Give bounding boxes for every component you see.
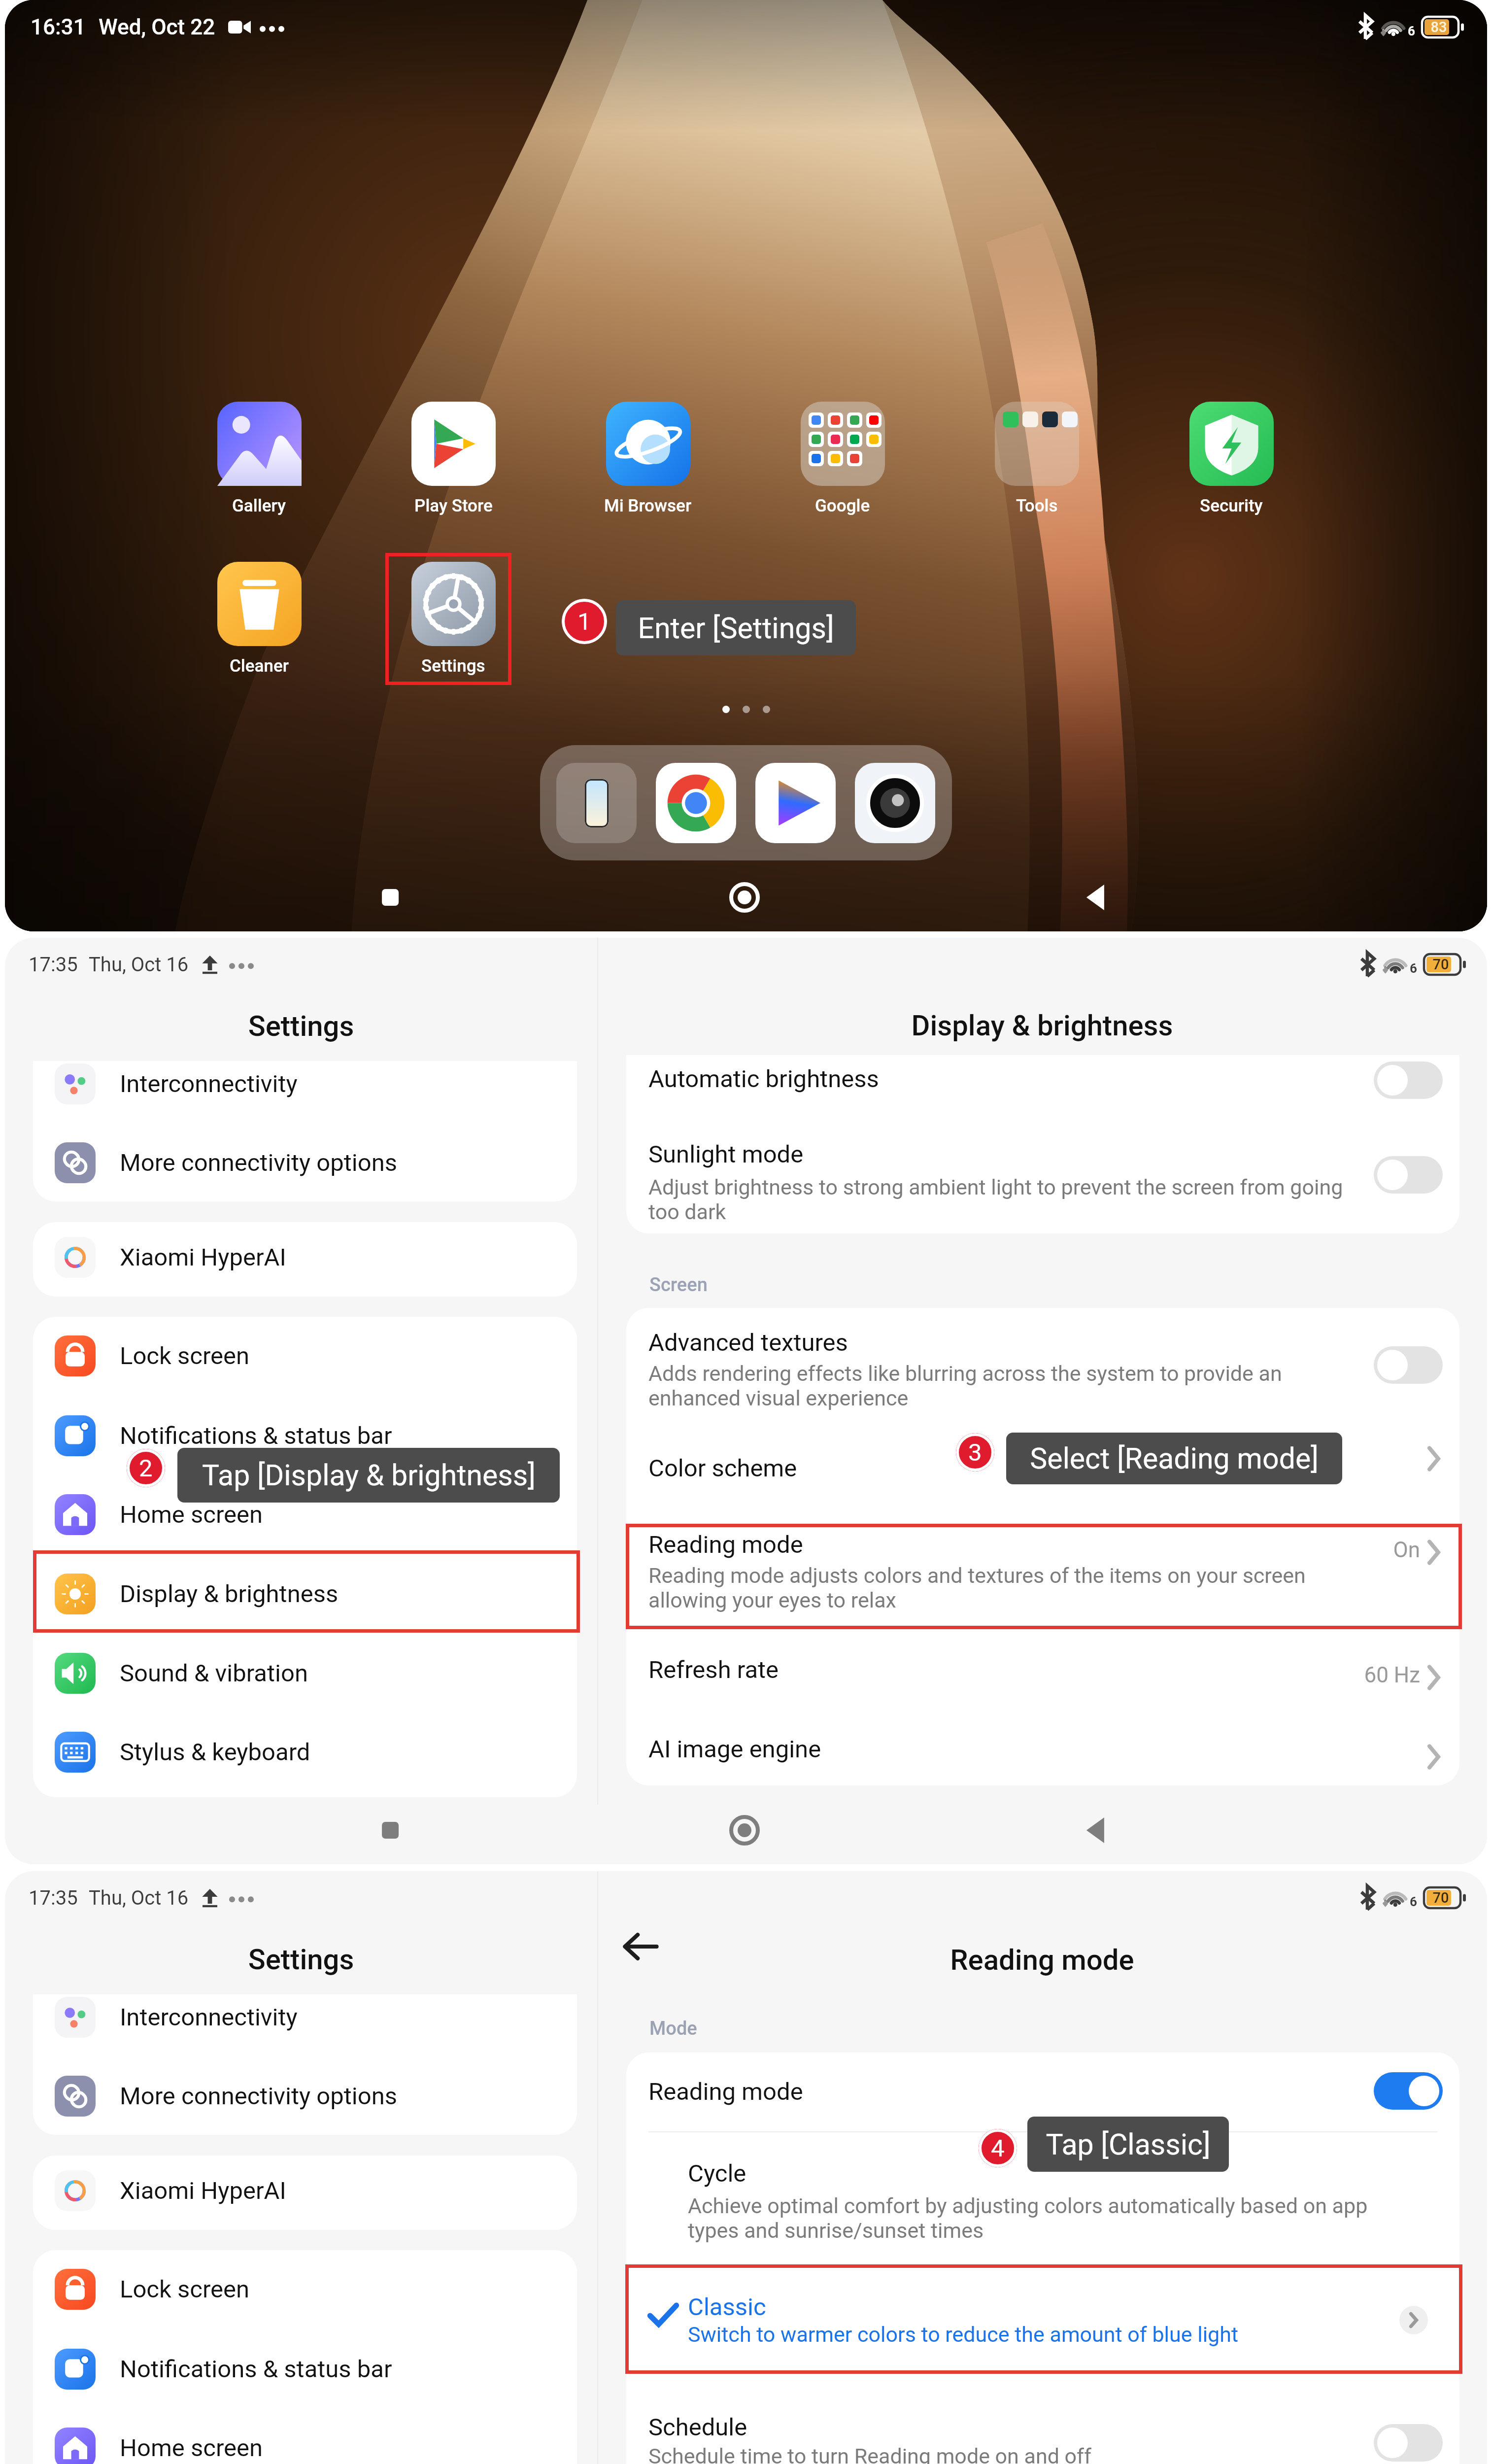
button[interactable]: [626, 2053, 1459, 2131]
button[interactable]: Themes: [556, 763, 637, 843]
staticText: Reading mode: [648, 1531, 803, 1559]
button[interactable]: Toggle: [1374, 2072, 1443, 2110]
button[interactable]: Settings: [394, 562, 512, 676]
staticText: 4: [991, 2134, 1005, 2162]
staticText: Tools: [1016, 496, 1058, 516]
button[interactable]: Notifications & status bar: [33, 1396, 577, 1475]
staticText: Wed, Oct 22: [99, 14, 215, 40]
button[interactable]: Display & brightness: [33, 1554, 577, 1633]
button[interactable]: Gallery: [200, 402, 318, 516]
button[interactable]: [626, 2264, 1459, 2374]
staticText: Reading mode: [648, 2078, 803, 2106]
staticText: 17:35: [29, 953, 78, 976]
staticText: 60 Hz: [1223, 1662, 1420, 1688]
button[interactable]: Chrome: [656, 763, 736, 843]
button[interactable]: Xiaomi HyperAI: [33, 2156, 577, 2228]
staticText: Security: [1200, 496, 1263, 516]
button[interactable]: [626, 2131, 1459, 2264]
staticText: 3: [968, 1438, 982, 1467]
staticText: On: [1223, 1537, 1420, 1563]
button[interactable]: Video: [755, 763, 836, 843]
staticText: More connectivity options: [120, 2082, 398, 2110]
button[interactable]: Lock screen: [33, 1317, 577, 1395]
staticText: Advanced textures: [648, 1329, 848, 1357]
staticText: Tap [Display & brightness]: [202, 1458, 536, 1492]
button[interactable]: Tools: [978, 402, 1096, 516]
staticText: 6: [1410, 1894, 1417, 1909]
staticText: Adjust brightness to strong ambient ligh…: [648, 1175, 1360, 1224]
button[interactable]: [626, 1422, 1459, 1495]
button[interactable]: Mi Browser: [589, 402, 707, 516]
staticText: Interconnectivity: [120, 1070, 298, 1098]
button[interactable]: Play Store: [394, 402, 512, 516]
button[interactable]: [626, 2374, 1459, 2464]
staticText: Gallery: [232, 496, 286, 516]
staticText: Select [Reading mode]: [1030, 1441, 1319, 1475]
staticText: More connectivity options: [120, 1149, 398, 1177]
staticText: Reading mode: [597, 1943, 1487, 1977]
button[interactable]: Stylus & keyboard: [33, 1712, 577, 1791]
button[interactable]: [626, 1115, 1459, 1233]
button[interactable]: Security: [1172, 402, 1290, 516]
button[interactable]: Home screen: [33, 2408, 577, 2464]
staticText: Color scheme: [648, 1454, 797, 1482]
button[interactable]: Google: [783, 402, 902, 516]
staticText: Sound & vibration: [120, 1659, 308, 1687]
staticText: 17:35: [29, 1886, 78, 1910]
staticText: Stylus & keyboard: [120, 1738, 310, 1766]
button[interactable]: Toggle: [1374, 1346, 1443, 1384]
button[interactable]: [626, 1495, 1459, 1609]
staticText: Settings: [5, 1943, 597, 1976]
staticText: Enter [Settings]: [638, 611, 834, 645]
button[interactable]: Lock screen: [33, 2250, 577, 2328]
staticText: Play Store: [414, 496, 493, 516]
button[interactable]: [626, 1688, 1459, 1767]
button[interactable]: More connectivity options: [33, 1123, 577, 1201]
button[interactable]: Interconnectivity: [33, 1994, 577, 2056]
staticText: Settings: [421, 656, 485, 676]
button[interactable]: [626, 1055, 1459, 1115]
staticText: Thu, Oct 16: [89, 953, 189, 976]
button[interactable]: Back: [617, 1923, 664, 1970]
staticText: Interconnectivity: [120, 2003, 298, 2031]
staticText: Adds rendering effects like blurring acr…: [648, 1361, 1360, 1410]
button[interactable]: [626, 1609, 1459, 1688]
staticText: Xiaomi HyperAI: [120, 2177, 286, 2205]
staticText: 6: [1408, 24, 1415, 38]
staticText: Sunlight mode: [648, 1140, 804, 1168]
staticText: Tap [Classic]: [1046, 2127, 1211, 2161]
staticText: 83: [1421, 19, 1457, 35]
staticText: Mode: [649, 2018, 697, 2040]
button[interactable]: Notifications & status bar: [33, 2329, 577, 2408]
staticText: Xiaomi HyperAI: [120, 1243, 286, 1271]
button[interactable]: Camera: [855, 763, 935, 843]
button[interactable]: Toggle: [1374, 2424, 1443, 2462]
staticText: 70: [1423, 1889, 1459, 1906]
staticText: Thu, Oct 16: [89, 1886, 189, 1910]
button[interactable]: [626, 1308, 1459, 1422]
staticText: Cleaner: [230, 656, 289, 676]
button[interactable]: Toggle: [1374, 1156, 1443, 1194]
button[interactable]: More connectivity options: [33, 2056, 577, 2135]
staticText: Screen: [649, 1274, 708, 1296]
staticText: Switch to warmer colors to reduce the am…: [688, 2322, 1363, 2347]
button[interactable]: Cleaner: [200, 562, 318, 676]
staticText: Settings: [5, 1009, 597, 1043]
staticText: 16:31: [31, 14, 86, 40]
button[interactable]: Toggle: [1374, 1061, 1443, 1099]
staticText: Schedule time to turn Reading mode on an…: [648, 2444, 1323, 2464]
button[interactable]: Interconnectivity: [33, 1061, 577, 1123]
staticText: Display & brightness: [120, 1580, 339, 1608]
button[interactable]: Xiaomi HyperAI: [33, 1222, 577, 1295]
staticText: Refresh rate: [648, 1656, 779, 1684]
button[interactable]: Home screen: [33, 1475, 577, 1554]
staticText: Schedule: [648, 2413, 747, 2441]
staticText: Display & brightness: [597, 1009, 1487, 1042]
staticText: 70: [1423, 956, 1459, 973]
button[interactable]: Sound & vibration: [33, 1634, 577, 1712]
staticText: 6: [1410, 961, 1417, 976]
staticText: Classic: [688, 2293, 766, 2321]
staticText: Mi Browser: [604, 496, 692, 516]
staticText: Reading mode adjusts colors and textures…: [648, 1563, 1360, 1612]
staticText: Google: [815, 496, 870, 516]
